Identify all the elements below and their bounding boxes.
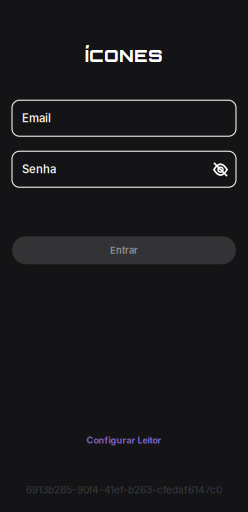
button[interactable]: Configurar Leitor (86, 435, 161, 446)
staticText: Configurar Leitor (86, 435, 161, 446)
staticText: ÍCONES (85, 44, 163, 66)
staticText: Email (22, 111, 51, 125)
staticText: Senha (22, 162, 56, 176)
staticText: 6913b285-90f4-41ef-b263-cfedaf6147c0 (26, 484, 222, 496)
button[interactable]: Email (0, 100, 248, 136)
button[interactable]: Mostrar senha (213, 162, 228, 176)
button[interactable]: Entrar (0, 236, 248, 264)
staticText: Entrar (110, 245, 138, 256)
